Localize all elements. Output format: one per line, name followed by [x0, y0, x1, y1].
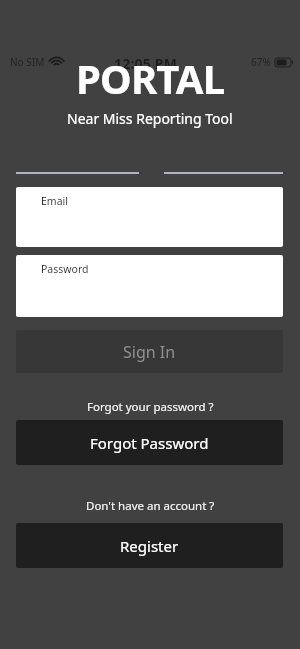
staticText: Near Miss Reporting Tool — [67, 109, 233, 128]
staticText: No SIM — [10, 55, 45, 69]
staticText: Email — [41, 194, 68, 208]
staticText: Password — [41, 262, 89, 276]
staticText: Forgot your password ? — [87, 399, 214, 415]
button[interactable]: Email — [16, 187, 283, 247]
staticText: 12:05 PM — [114, 54, 178, 73]
button[interactable]: Forgot Password — [16, 420, 283, 465]
staticText: 67% — [251, 55, 271, 69]
staticText: Register — [120, 536, 179, 556]
staticText: PORTAL — [76, 51, 225, 105]
staticText: Forgot Password — [90, 433, 209, 453]
staticText: Sign In — [123, 341, 176, 363]
button[interactable]: Password — [16, 255, 283, 317]
button[interactable]: Register — [16, 523, 283, 568]
button[interactable]: Sign In — [16, 330, 283, 373]
staticText: Don't have an account ? — [86, 498, 215, 514]
